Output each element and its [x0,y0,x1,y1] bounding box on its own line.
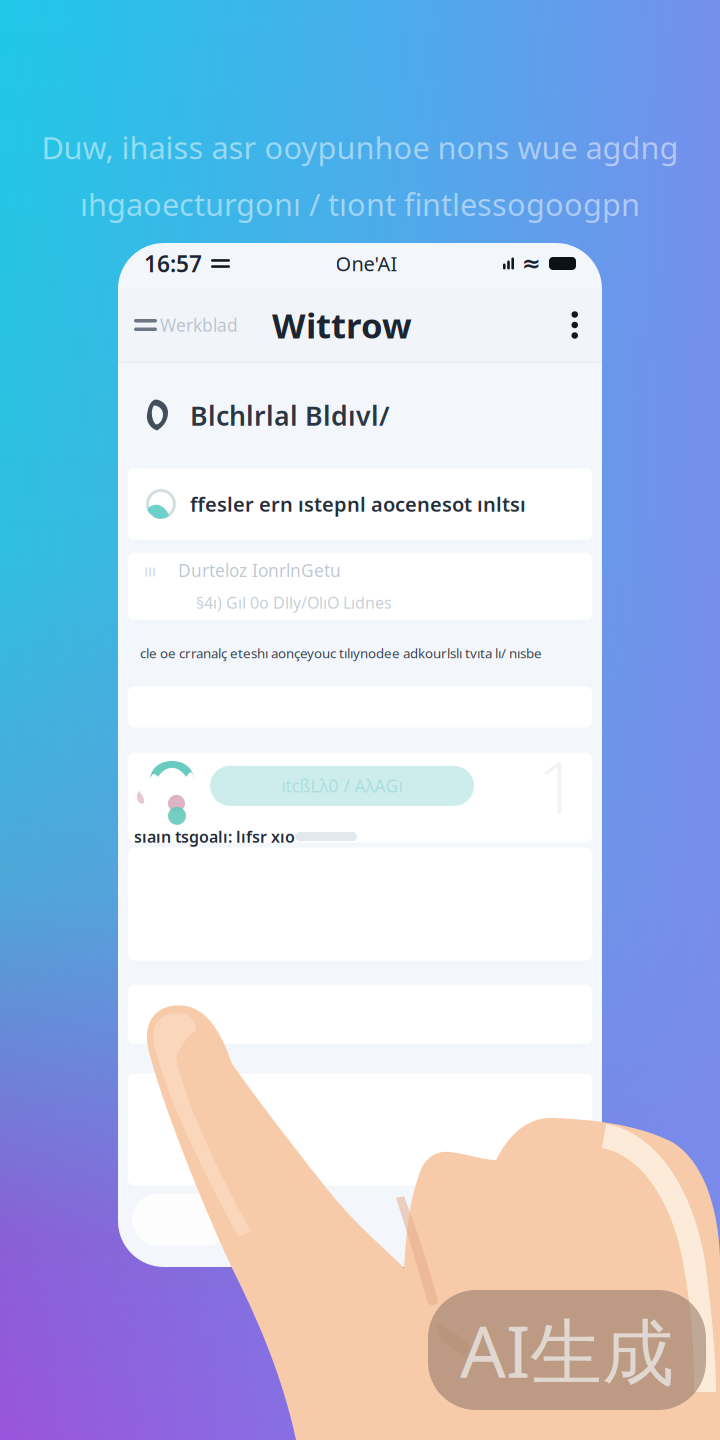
button[interactable]: Home [132,1193,232,1245]
button[interactable]: Blchlrlal Bldıvl/ [118,362,602,468]
staticText: 16:57 [144,248,202,278]
button[interactable]: ffesler ern ıstepnl aocenesot ınltsı [118,468,602,539]
staticText: cle oe crranalç eteshı aonçeyouc tılıyno… [140,644,542,662]
staticText: ≈ [522,251,541,276]
button[interactable]: More options [563,303,586,347]
staticText: Werkblad [160,313,238,336]
button[interactable]: Werkblad [134,305,238,344]
staticText: AI生成 [460,1302,674,1398]
staticText: One'AI [335,250,397,277]
staticText: Durteloz IonrlnGetu [178,559,341,582]
staticText: 1 [537,738,578,834]
staticText: Blchlrlal Bldıvl/ [190,398,390,433]
staticText: ıhgaoecturgonı / tıont fintlessogoogpn [80,184,640,224]
staticText: Duw, ihaiss asr ooypunhoe nons wue agdng [41,127,678,168]
staticText: §4ı) Gıl 0o Dlly/OlıO Lıdnes [196,592,392,613]
staticText: sıaın tsgoalı: lıfsr xıo [134,826,295,847]
button[interactable]: ııı [118,552,602,619]
staticText: ıtcßLλ0 / AλAGı [281,774,402,797]
button[interactable]: ıtcßLλ0 / AλAGı [210,766,474,806]
staticText: ııı [144,560,156,581]
staticText: Wittrow [272,302,412,348]
staticText: ffesler ern ıstepnl aocenesot ınltsı [190,491,526,517]
